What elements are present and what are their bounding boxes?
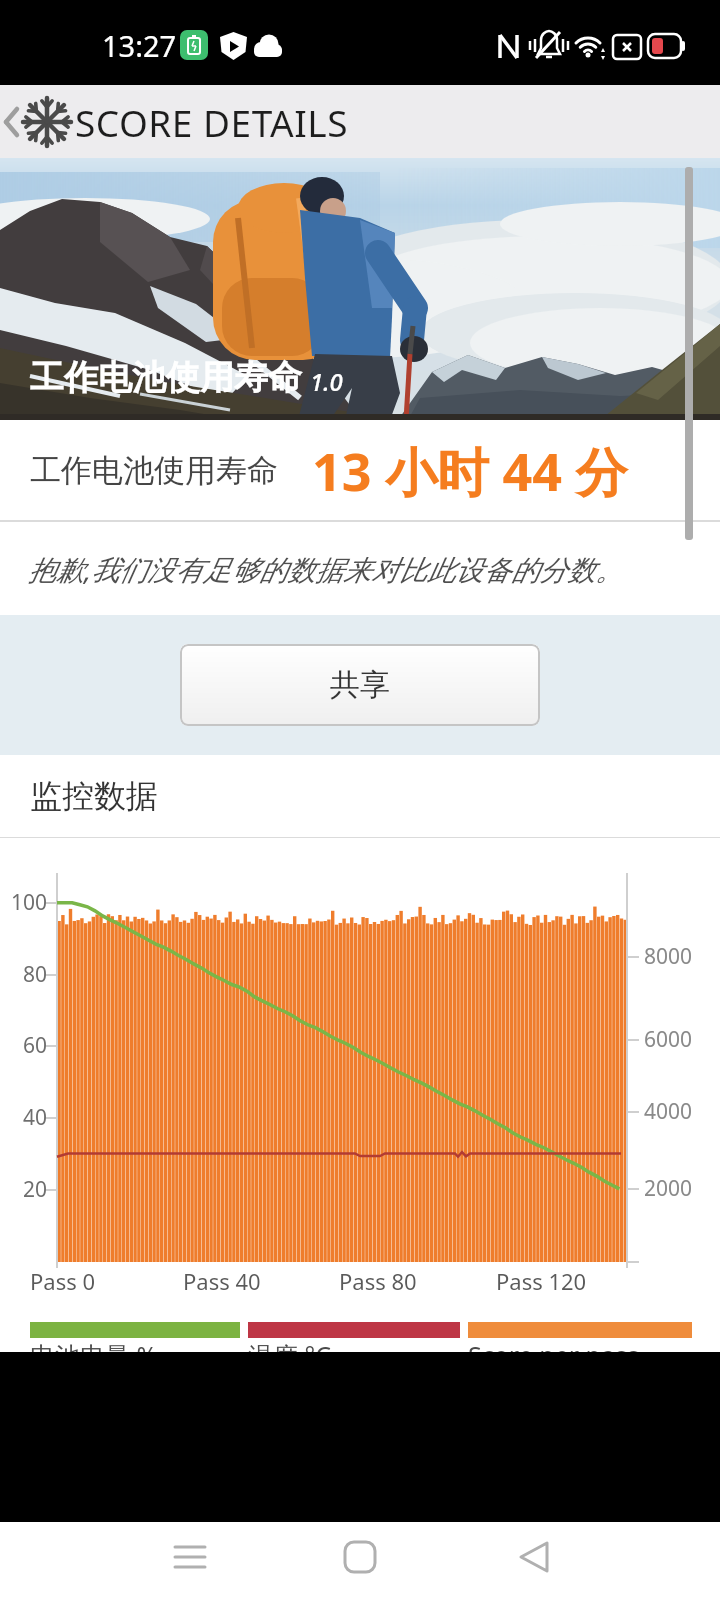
staticText: 工作电池使用寿命 [30,356,302,399]
staticText: 电池电量 % [30,1338,158,1352]
button[interactable] [336,1533,384,1581]
staticText: Score per pass [468,1338,639,1352]
staticText: 共享 [330,666,390,704]
staticText: 温度 °C [248,1338,332,1352]
staticText: SCORE DETAILS [75,97,349,147]
staticText: Pass 120 [496,1266,587,1296]
staticText: 20 [23,1175,48,1204]
staticText: 60 [23,1031,48,1060]
staticText: 13 小时 44 分 [312,435,628,506]
staticText: 13:27 [102,26,177,65]
staticText: 4000 [644,1097,693,1126]
button[interactable]: SCORE DETAILS [0,85,349,158]
button[interactable]: 共享 [180,644,540,726]
button[interactable] [166,1533,214,1581]
staticText: 抱歉,我们没有足够的数据来对比此设备的分数。 [28,550,624,588]
staticText: 8000 [644,942,693,971]
staticText: Pass 40 [183,1266,261,1296]
staticText: 2000 [644,1174,693,1203]
staticText: 1.0 [310,365,343,398]
staticText: Pass 0 [30,1266,96,1296]
button[interactable] [509,1533,557,1581]
staticText: 40 [23,1103,48,1132]
staticText: 工作电池使用寿命 [30,451,278,490]
staticText: 80 [23,960,48,989]
staticText: Pass 80 [339,1266,417,1296]
staticText: 6000 [644,1025,693,1054]
staticText: 监控数据 [30,776,158,816]
staticText: 100 [11,888,48,917]
